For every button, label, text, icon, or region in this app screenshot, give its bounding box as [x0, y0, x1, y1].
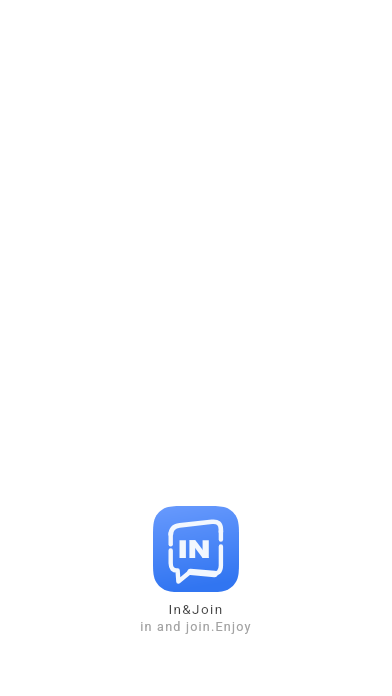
- staticText: in and join.Enjoy: [0, 619, 392, 637]
- button[interactable]: In&Join app icon: [153, 506, 239, 592]
- staticText: In&Join: [0, 601, 392, 619]
